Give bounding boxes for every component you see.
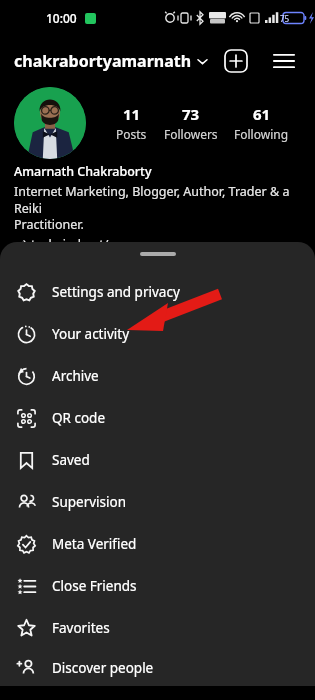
staticText: 73 <box>182 104 200 124</box>
button[interactable]: Meta Verified <box>0 523 315 565</box>
button[interactable]: 61 <box>230 102 293 144</box>
button[interactable]: Create new post <box>219 44 253 78</box>
staticText: chakrabortyamarnath <box>14 50 192 72</box>
staticText: Amarnath Chakraborty <box>14 163 152 180</box>
button[interactable]: 11 <box>112 102 151 144</box>
staticText: Meta Verified <box>52 535 137 553</box>
button[interactable]: Menu <box>267 44 301 78</box>
button[interactable]: Saved <box>0 439 315 481</box>
staticText: Saved <box>52 451 90 469</box>
button[interactable]: 73 <box>160 102 222 144</box>
staticText: Followers <box>164 126 218 142</box>
staticText: Internet Marketing, Blogger, Author, Tra… <box>14 183 301 232</box>
button[interactable]: QR code <box>0 397 315 439</box>
staticText: techviral.net/ <box>31 236 109 253</box>
button[interactable]: Supervision <box>0 481 315 523</box>
button[interactable]: chakrabortyamarnath <box>14 46 208 76</box>
staticText: 10:00 <box>46 10 77 26</box>
staticText: Favorites <box>52 619 110 637</box>
button[interactable]: Favorites <box>0 607 315 649</box>
button[interactable]: Profile photo <box>14 87 86 159</box>
button[interactable]: Archive <box>0 355 315 397</box>
staticText: Your activity <box>52 325 130 343</box>
staticText: 11 <box>123 104 141 124</box>
button[interactable]: Settings and privacy <box>0 271 315 313</box>
staticText: Discover people <box>52 659 154 677</box>
staticText: 61 <box>253 104 271 124</box>
staticText: 75 <box>280 13 290 24</box>
button[interactable]: Close Friends <box>0 565 315 607</box>
staticText: Supervision <box>52 493 127 511</box>
staticText: Following <box>234 126 289 142</box>
staticText: Archive <box>52 367 99 385</box>
staticText: QR code <box>52 409 106 427</box>
button[interactable]: Discover people <box>0 649 315 686</box>
button[interactable]: Your activity <box>0 313 315 355</box>
staticText: Close Friends <box>52 577 137 595</box>
button[interactable]: techviral.net/ <box>14 235 109 254</box>
staticText: Posts <box>116 126 147 142</box>
staticText: Settings and privacy <box>52 283 180 301</box>
